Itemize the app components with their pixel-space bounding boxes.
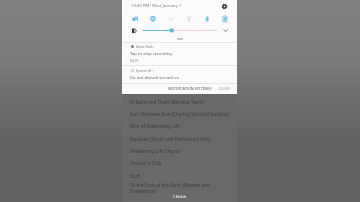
button[interactable]: In Spirit and Truth (Worship Team) — [122, 96, 237, 108]
button[interactable]: Wi-Fi — [162, 13, 180, 25]
button[interactable]: Game Tools — [122, 42, 237, 64]
staticText: 10:43 PM — [131, 3, 150, 9]
button[interactable]: Shooter's Club — [122, 157, 237, 169]
button[interactable]: NextGen (Youth and Elementary Kids) — [122, 133, 237, 145]
staticText: In Spirit and Truth (Worship Team) — [130, 99, 204, 105]
button[interactable]: System UI — [122, 66, 237, 83]
staticText: T-Mobile — [173, 194, 187, 198]
button[interactable]: To the Ends of the Earth (Mission and Ev… — [122, 182, 237, 194]
staticText: NOTIFICATION SETTINGS — [168, 86, 212, 91]
staticText: 04:37 — [130, 58, 139, 62]
button[interactable]: Iron Sharpens Iron (Sharing Spiritual In… — [122, 108, 237, 120]
staticText: System UI — [134, 68, 152, 72]
staticText: Redeeming Life Church — [130, 148, 181, 154]
staticText: Men of Redeeming Life — [130, 123, 180, 129]
button[interactable]: Redeeming Life Church — [122, 145, 237, 157]
button[interactable]: Flashlight — [180, 13, 198, 25]
staticText: Game Tools — [134, 44, 154, 48]
staticText: CLEAR — [219, 86, 230, 91]
button[interactable] — [122, 26, 237, 38]
button[interactable]: Location — [144, 13, 162, 25]
staticText: Wed, January 1 — [152, 3, 182, 9]
button[interactable]: Men of Redeeming Life — [122, 120, 237, 132]
staticText: To the Ends of the Earth (Mission and Ev… — [130, 182, 233, 194]
button[interactable]: Mobile data — [216, 13, 234, 25]
staticText: Shooter's Club — [130, 160, 162, 166]
staticText: NextGen (Youth and Elementary Kids) — [130, 136, 211, 142]
button[interactable]: NOTIFICATION SETTINGS — [165, 83, 215, 94]
button[interactable]: Bluetooth — [198, 13, 216, 25]
button[interactable]: CLEAR — [215, 83, 234, 94]
staticText: Staff — [130, 173, 140, 179]
button[interactable]: Settings — [220, 2, 229, 11]
staticText: Do not disturb turned on — [130, 75, 180, 81]
staticText: Tap to stop recording. — [130, 51, 173, 57]
button[interactable]: Sound off — [125, 13, 144, 25]
staticText: Iron Sharpens Iron (Sharing Spiritual In… — [130, 111, 229, 117]
